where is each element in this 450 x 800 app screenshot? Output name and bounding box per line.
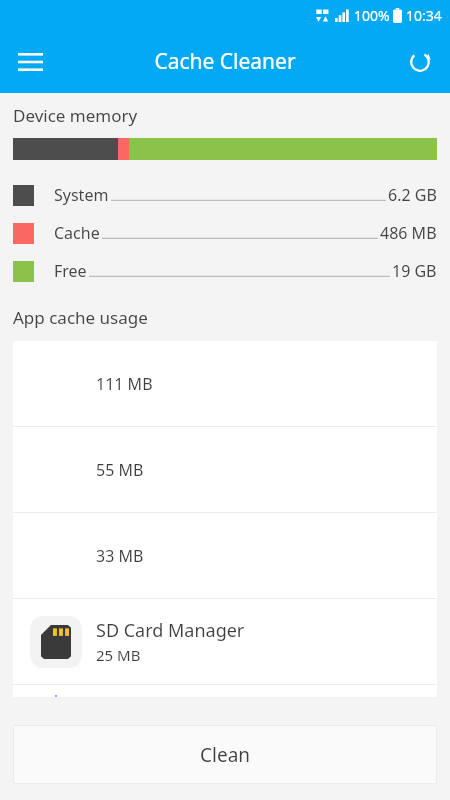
button[interactable]: Refresh [396,38,444,86]
staticText: 55 MB [96,459,144,481]
button[interactable]: Open navigation menu [6,38,54,86]
staticText: 33 MB [96,545,144,567]
staticText: 100% [354,6,390,25]
staticText: App cache usage [13,306,148,329]
staticText: System [54,184,109,206]
staticText: 19 GB [392,260,437,282]
staticText: Free [54,260,87,282]
staticText: Clean [200,742,251,768]
staticText: Cache [54,222,100,244]
staticText: 10:34 [406,6,442,25]
staticText: SD Card Manager [96,618,245,643]
staticText: Device memory [13,104,138,127]
button[interactable]: 55 MB [13,427,437,512]
staticText: 25 MB [96,645,141,665]
button[interactable]: SD Card Manager [13,599,437,684]
button[interactable]: System [0,176,450,214]
staticText: 6.2 GB [388,184,437,206]
staticText: Cache Cleaner [154,47,296,76]
button[interactable]: 33 MB [13,513,437,598]
staticText: 111 MB [96,373,153,395]
button[interactable]: Cache [0,214,450,252]
button[interactable]: Free [0,252,450,290]
button[interactable] [13,685,437,697]
staticText: 486 MB [380,222,437,244]
button[interactable]: Clean [13,725,437,784]
button[interactable]: 111 MB [13,341,437,426]
